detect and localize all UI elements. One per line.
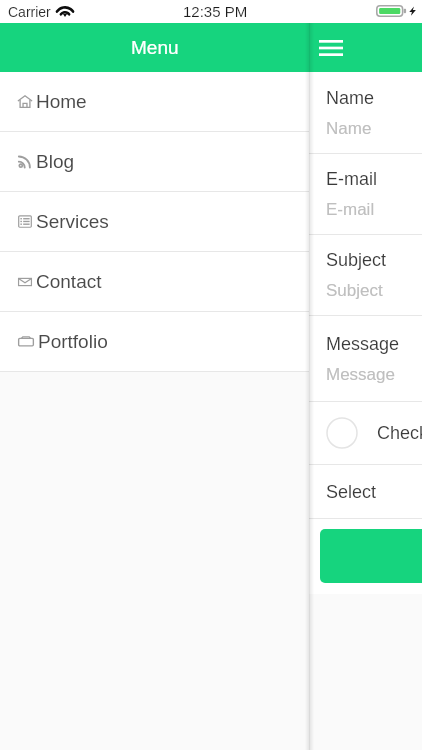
staticText: Carrier <box>8 4 51 20</box>
staticText: Name <box>326 119 372 138</box>
staticText: Portfolio <box>38 331 108 352</box>
staticText: 12:35 PM <box>183 3 248 20</box>
staticText: Message <box>326 365 395 384</box>
button[interactable]: Checkbox <box>309 402 422 464</box>
button[interactable]: Select <box>309 465 422 518</box>
staticText: Message <box>326 334 400 354</box>
button[interactable]: Contact <box>0 252 309 311</box>
button[interactable]: Home <box>0 72 309 131</box>
staticText: Subject <box>326 250 387 270</box>
staticText: Home <box>36 91 87 112</box>
staticText: Services <box>36 211 109 232</box>
staticText: E-mail <box>326 169 378 189</box>
button[interactable]: Name <box>309 72 422 153</box>
button[interactable]: Blog <box>0 132 309 191</box>
button[interactable]: Subject <box>309 235 422 315</box>
button[interactable]: Submit <box>320 529 422 583</box>
staticText: Select <box>326 482 377 502</box>
staticText: Checkbox <box>377 423 422 443</box>
button[interactable]: E-mail <box>309 154 422 234</box>
staticText: E-mail <box>326 200 375 219</box>
button[interactable]: Message <box>309 316 422 401</box>
staticText: Name <box>326 88 375 108</box>
button[interactable]: Open navigation menu <box>313 30 348 65</box>
staticText: Menu <box>131 37 179 58</box>
button[interactable]: Services <box>0 192 309 251</box>
staticText: Subject <box>326 281 383 300</box>
staticText: Blog <box>36 151 75 172</box>
button[interactable]: Portfolio <box>0 312 309 371</box>
staticText: Contact <box>36 271 102 292</box>
